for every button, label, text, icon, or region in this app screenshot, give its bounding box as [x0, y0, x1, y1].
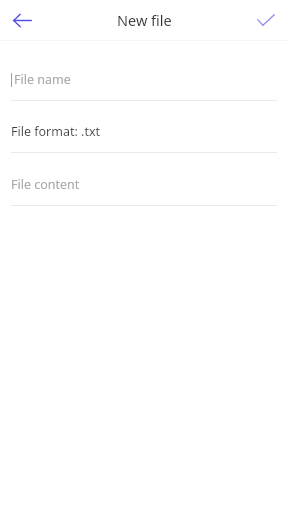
button[interactable]: Save [244, 0, 288, 40]
staticText: New file [117, 10, 172, 30]
button[interactable]: File content [0, 176, 288, 206]
staticText: File content [11, 176, 80, 193]
button[interactable]: File name [0, 71, 288, 101]
button[interactable]: File format: .txt [0, 123, 288, 153]
staticText: File format: .txt [11, 123, 101, 140]
button[interactable]: Back [0, 0, 44, 40]
staticText: File name [14, 71, 71, 88]
